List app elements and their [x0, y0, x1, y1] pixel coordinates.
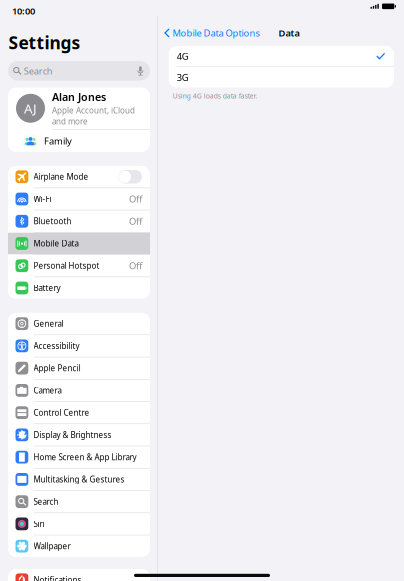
- button[interactable]: Control Centre: [8, 402, 150, 423]
- staticText: Apple Account, iCloud: [52, 105, 135, 116]
- staticText: Bluetooth: [33, 216, 71, 226]
- staticText: Off: [129, 193, 142, 205]
- staticText: Alan Jones: [52, 90, 106, 104]
- staticText: Personal Hotspot: [33, 260, 99, 271]
- staticText: Search: [33, 496, 58, 507]
- staticText: Apple Pencil: [33, 363, 80, 373]
- staticText: Accessibility: [33, 341, 79, 351]
- staticText: Data: [279, 27, 300, 39]
- button[interactable]: Wallpaper: [8, 535, 150, 557]
- button[interactable]: Wi-Fi: [8, 188, 150, 210]
- staticText: Home Screen & App Library: [33, 452, 136, 462]
- staticText: Notifications: [33, 574, 81, 581]
- button[interactable]: AJ: [8, 87, 150, 129]
- staticText: Off: [129, 259, 142, 272]
- button[interactable]: Camera: [8, 380, 150, 401]
- staticText: 3G: [177, 71, 189, 83]
- staticText: 10:00: [12, 5, 35, 17]
- staticText: Search: [24, 65, 53, 77]
- button[interactable]: Bluetooth: [8, 210, 150, 232]
- staticText: Siri: [33, 519, 44, 529]
- button[interactable]: 3G: [169, 67, 394, 87]
- staticText: Camera: [33, 385, 61, 396]
- staticText: Multitasking & Gestures: [33, 474, 124, 485]
- staticText: Family: [44, 135, 72, 147]
- staticText: Airplane Mode: [33, 171, 88, 182]
- staticText: Display & Brightness: [33, 430, 111, 440]
- staticText: Using 4G loads data faster.: [173, 91, 258, 100]
- staticText: Wallpaper: [33, 541, 70, 551]
- staticText: AJ: [24, 99, 37, 117]
- staticText: 4G: [177, 50, 189, 62]
- button[interactable]: Home Screen & App Library: [8, 446, 150, 468]
- staticText: General: [33, 318, 63, 329]
- button[interactable]: Accessibility: [8, 335, 150, 357]
- staticText: Control Centre: [33, 407, 89, 418]
- button[interactable]: Family: [8, 130, 150, 152]
- staticText: Off: [129, 215, 142, 227]
- staticText: Battery: [33, 283, 60, 293]
- staticText: Mobile Data: [33, 238, 78, 249]
- button[interactable]: Search: [8, 61, 150, 80]
- button[interactable]: Mobile Data Options: [158, 22, 260, 44]
- button[interactable]: 4G: [169, 46, 394, 66]
- button[interactable]: General: [8, 313, 150, 334]
- button[interactable]: Apple Pencil: [8, 357, 150, 379]
- staticText: Wi-Fi: [33, 194, 51, 204]
- button[interactable]: Search: [8, 491, 150, 512]
- button[interactable]: Personal Hotspot: [8, 255, 150, 276]
- staticText: Mobile Data Options: [173, 27, 260, 39]
- button[interactable]: Battery: [8, 277, 150, 299]
- staticText: Settings: [8, 31, 80, 54]
- button[interactable]: Mobile Data: [8, 233, 150, 254]
- button[interactable]: Siri: [8, 513, 150, 535]
- button[interactable]: Airplane Mode: [8, 166, 150, 187]
- button[interactable]: Display & Brightness: [8, 424, 150, 446]
- button[interactable]: Notifications: [8, 569, 150, 581]
- staticText: and more: [52, 116, 88, 127]
- button[interactable]: Multitasking & Gestures: [8, 469, 150, 490]
